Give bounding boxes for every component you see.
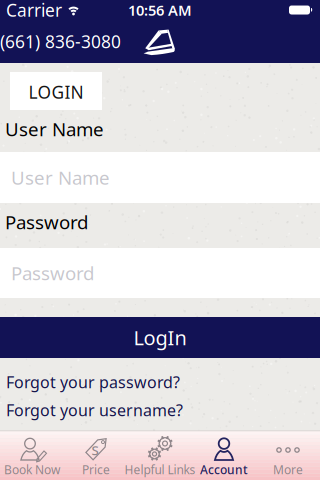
staticText: (661) 836-3080 — [0, 30, 121, 53]
staticText: Helpful Links — [124, 461, 195, 477]
staticText: Account — [200, 461, 248, 477]
staticText: Price — [82, 461, 110, 477]
button[interactable]: Forgot your username? — [6, 399, 183, 421]
staticText: Carrier — [6, 0, 62, 21]
button[interactable]: S — [64, 431, 128, 480]
staticText: Password — [11, 261, 94, 285]
staticText: User Name — [11, 165, 110, 190]
button[interactable]: Forgot your password? — [6, 371, 180, 393]
button[interactable]: Helpful Links — [128, 431, 192, 480]
button[interactable]: User Name — [0, 152, 320, 203]
button[interactable]: Password — [0, 248, 320, 298]
staticText: User Name — [5, 117, 104, 141]
staticText: Book Now — [4, 461, 60, 477]
staticText: LogIn — [133, 324, 186, 351]
staticText: S — [91, 441, 98, 459]
button[interactable]: LOGIN — [10, 72, 102, 110]
staticText: Password — [5, 210, 88, 234]
button[interactable]: Account — [192, 431, 256, 480]
staticText: Forgot your username? — [6, 399, 183, 421]
staticText: More — [273, 461, 303, 477]
button[interactable]: More — [256, 431, 320, 480]
staticText: LOGIN — [28, 80, 83, 103]
staticText: 10:56 AM — [128, 0, 192, 20]
button[interactable]: LogIn — [0, 317, 320, 358]
staticText: Forgot your password? — [6, 371, 180, 393]
button[interactable]: Book Now — [0, 431, 64, 480]
